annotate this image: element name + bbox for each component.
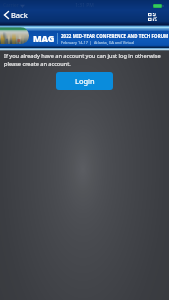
staticText: February 14-17 | Atlanta, GA and Virtual <box>61 40 135 45</box>
button[interactable]: Back <box>0 8 35 22</box>
staticText: Carrier <box>3 2 19 9</box>
staticText: Login <box>75 76 95 86</box>
staticText: 1:31 PM <box>75 2 94 9</box>
button[interactable]: Scan QR code <box>143 13 169 23</box>
button[interactable]: Login <box>56 72 113 90</box>
staticText: MAG <box>33 32 55 44</box>
staticText: Back <box>11 10 28 20</box>
staticText: If you already have an account you can j… <box>4 52 166 67</box>
staticText: 2022 MID-YEAR CONFERENCE AND TECH FORUM <box>61 33 169 39</box>
